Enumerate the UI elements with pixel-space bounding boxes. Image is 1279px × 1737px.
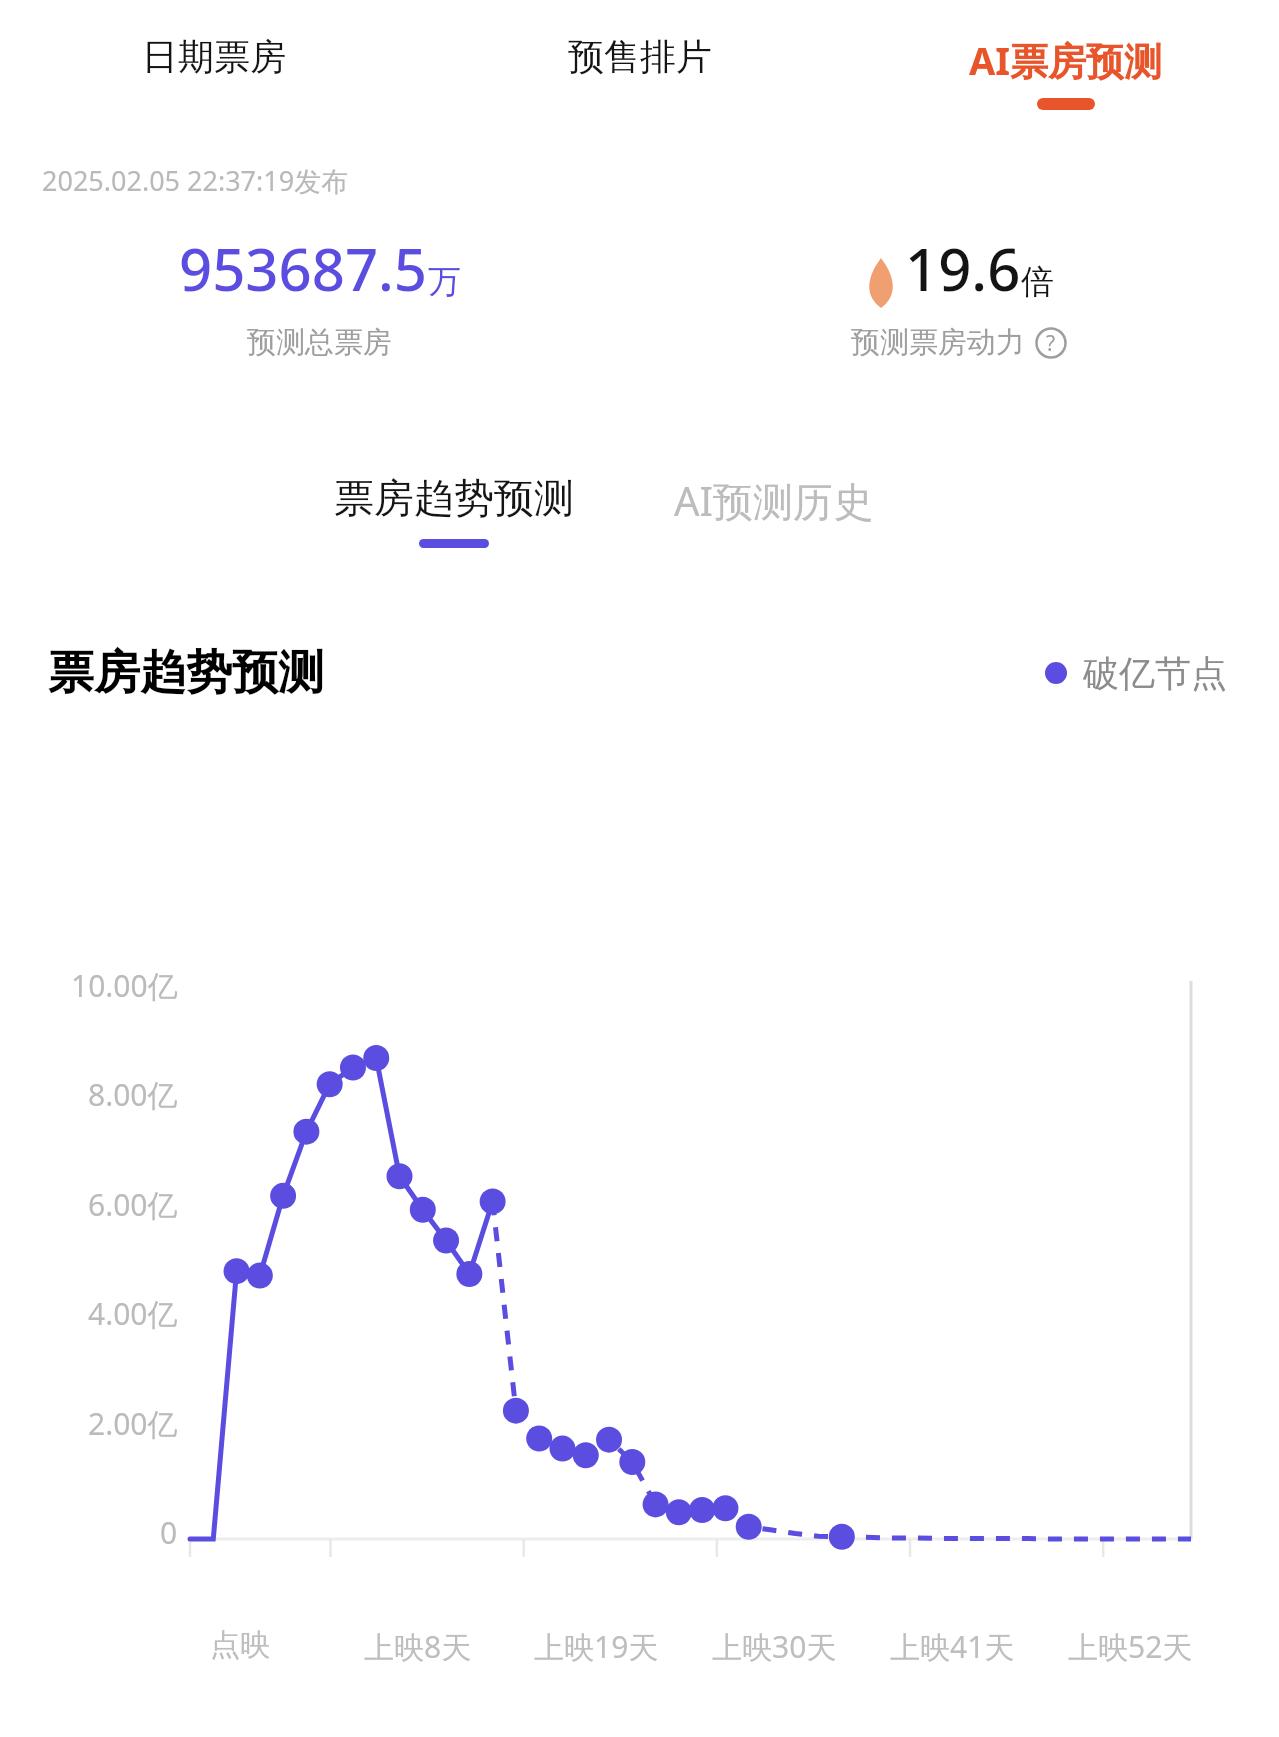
button[interactable]: AI预测历史: [674, 473, 874, 528]
staticText: 上映30天: [712, 1626, 837, 1667]
button[interactable]: 预售排片: [427, 34, 853, 79]
staticText: 预测总票房: [247, 324, 392, 361]
staticText: 0: [160, 1512, 178, 1553]
button[interactable]: 帮助说明: [1035, 327, 1067, 359]
staticText: 上映19天: [534, 1626, 659, 1667]
staticText: 破亿节点: [1083, 651, 1227, 696]
staticText: 2025.02.05 22:37:19发布: [42, 162, 1279, 199]
staticText: AI预测历史: [674, 473, 874, 528]
staticText: 点映: [210, 1626, 270, 1664]
button[interactable]: 票房趋势预测: [334, 473, 574, 548]
staticText: 2.00亿: [88, 1403, 178, 1444]
staticText: 票房趋势预测: [48, 644, 324, 702]
staticText: 4.00亿: [88, 1293, 178, 1334]
staticText: 6.00亿: [88, 1184, 178, 1225]
button[interactable]: 日期票房: [0, 34, 427, 79]
staticText: 8.00亿: [88, 1074, 178, 1115]
staticText: 预测票房动力: [851, 324, 1025, 361]
staticText: 预售排片: [568, 34, 712, 79]
staticText: 上映41天: [890, 1626, 1015, 1667]
staticText: ?: [1046, 329, 1056, 358]
staticText: 上映52天: [1068, 1626, 1193, 1667]
staticText: 953687.5: [179, 229, 428, 308]
staticText: 日期票房: [142, 34, 286, 79]
staticText: 万: [428, 261, 461, 303]
button[interactable]: AI票房预测: [853, 34, 1279, 110]
staticText: 倍: [1021, 261, 1054, 303]
staticText: AI票房预测: [969, 34, 1163, 86]
staticText: 10.00亿: [71, 965, 178, 1006]
staticText: 票房趋势预测: [334, 473, 574, 523]
staticText: 19.6: [905, 229, 1021, 308]
staticText: 上映8天: [364, 1626, 472, 1667]
